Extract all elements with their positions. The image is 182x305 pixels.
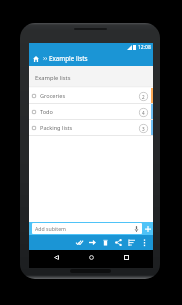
button[interactable]: Home [30,53,41,64]
button[interactable]: Packing lists [29,120,153,136]
staticText: Groceries [40,92,66,100]
staticText: 4 [142,110,145,116]
staticText: Todo [40,108,53,116]
button[interactable]: Share [112,235,125,250]
button[interactable]: Voice input [132,224,141,234]
staticText: 3 [142,126,145,132]
staticText: 2 [142,94,145,100]
button[interactable]: Groceries [29,88,153,104]
button[interactable]: Todo [29,104,153,120]
staticText: Packing lists [40,124,73,132]
button[interactable]: More options [138,235,151,250]
button[interactable]: Add subitem [32,223,142,234]
button[interactable]: Add [142,222,153,235]
button[interactable]: Move [86,235,99,250]
staticText: Add subitem [35,225,66,232]
staticText: Example lists [49,54,88,63]
button[interactable]: Delete [99,235,112,250]
staticText: 12:08 [138,44,151,51]
staticText: Example lists [35,74,71,82]
button[interactable]: Recent apps [120,252,133,262]
button[interactable]: Sort [125,235,138,250]
button[interactable]: Back [50,252,63,262]
button[interactable]: Home [85,252,98,262]
button[interactable]: Mark all done [73,235,86,250]
